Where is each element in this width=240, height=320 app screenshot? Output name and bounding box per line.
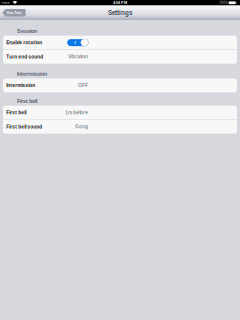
button[interactable]: Turn end sound (3, 50, 237, 64)
staticText: Enable rotation (6, 40, 42, 45)
staticText: OFF (78, 83, 88, 88)
staticText: Gong (75, 124, 88, 129)
staticText: 100% (219, 1, 227, 4)
staticText: Intermission (17, 71, 47, 77)
staticText: First bell sound (6, 124, 42, 129)
staticText: Vibration (68, 54, 88, 59)
button[interactable]: First bell sound (3, 120, 237, 134)
staticText: Settings (108, 9, 132, 16)
staticText: Your Turn (6, 11, 21, 15)
button[interactable]: Your Turn (2, 9, 26, 16)
button[interactable]: First bell (3, 106, 237, 119)
staticText: First bell (17, 98, 37, 104)
staticText: 中国联通 (1, 1, 9, 4)
staticText: First bell (6, 110, 26, 115)
button[interactable]: Enable rotation (67, 39, 88, 46)
staticText: Turn end sound (6, 54, 43, 59)
staticText: Intermission (6, 83, 35, 88)
staticText: 1m before (65, 110, 88, 115)
button[interactable]: Intermission (3, 79, 237, 92)
staticText: 4:04 PM (113, 1, 127, 5)
staticText: Session (17, 28, 37, 34)
